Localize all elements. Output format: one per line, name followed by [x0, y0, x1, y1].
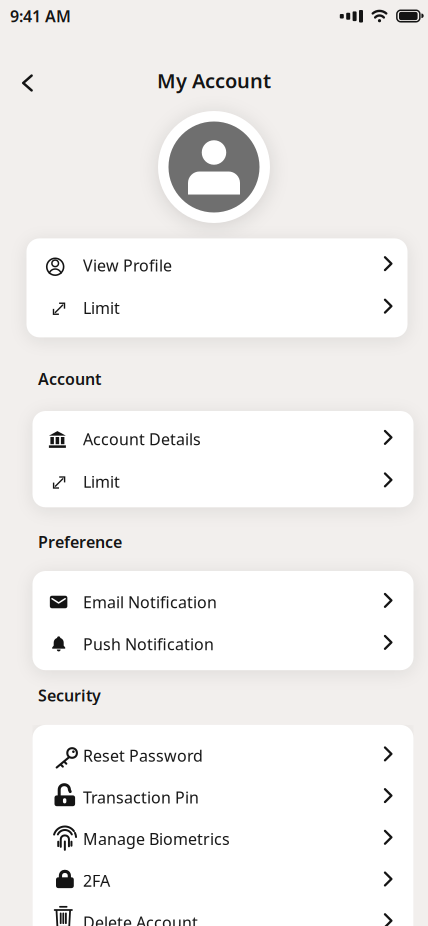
staticText: Account Details [83, 428, 201, 450]
staticText: Preference [38, 531, 122, 552]
button[interactable]: Limit [32, 460, 413, 503]
button[interactable]: Transaction Pin [32, 776, 413, 818]
button[interactable]: 2FA [32, 860, 413, 901]
staticText: Account [38, 368, 101, 389]
button[interactable]: View Profile [26, 244, 407, 286]
staticText: 9:41 AM [10, 5, 71, 27]
staticText: Limit [83, 297, 120, 318]
button[interactable]: Email Notification [32, 581, 413, 623]
button[interactable]: Reset Password [32, 735, 413, 776]
staticText: Reset Password [83, 745, 203, 766]
staticText: Email Notification [83, 591, 217, 613]
staticText: Security [38, 685, 101, 706]
button[interactable]: Push Notification [32, 623, 413, 665]
button[interactable]: Account Details [32, 418, 413, 460]
staticText: Push Notification [83, 633, 214, 655]
button[interactable]: Manage Biometrics [32, 818, 413, 860]
staticText: Delete Account [83, 912, 198, 926]
staticText: Limit [83, 471, 120, 492]
staticText: My Account [157, 67, 271, 94]
button[interactable]: Delete Account [32, 901, 413, 926]
button[interactable]: Back [0, 74, 34, 92]
button[interactable]: Limit [26, 286, 407, 329]
staticText: Transaction Pin [83, 787, 199, 808]
staticText: 2FA [83, 870, 110, 891]
staticText: View Profile [83, 255, 172, 276]
staticText: Manage Biometrics [83, 828, 230, 849]
